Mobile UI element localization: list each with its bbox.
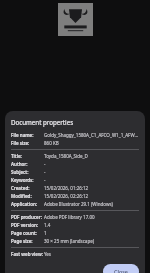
staticText: 1 bbox=[44, 230, 139, 236]
staticText: File name: bbox=[11, 132, 44, 138]
staticText: File size: bbox=[11, 140, 44, 146]
staticText: Document properties bbox=[11, 118, 74, 126]
staticText: 860 KB bbox=[44, 140, 139, 146]
staticText: Fast web view: bbox=[11, 251, 44, 257]
staticText: Adobe Illustrator 29.1 (Windows) bbox=[44, 201, 139, 207]
staticText: Page count: bbox=[11, 230, 44, 236]
staticText: 30 × 25 mm (landscape) bbox=[44, 238, 139, 244]
button[interactable]: Document preview bbox=[58, 3, 93, 36]
staticText: Page size: bbox=[11, 238, 44, 244]
staticText: Subject: bbox=[11, 169, 44, 175]
staticText: Keywords: bbox=[11, 177, 44, 183]
staticText: Toyda_1580A_Side_D bbox=[44, 153, 139, 159]
staticText: 15/02/2026, 02:26:12 bbox=[44, 193, 139, 199]
staticText: 1.4 bbox=[44, 222, 139, 228]
staticText: - bbox=[44, 161, 139, 167]
staticText: Goldy_Shaggy_1580A_C1_AFCO_W1_1_AFW0_G0_… bbox=[44, 132, 139, 138]
staticText: 15/02/2026, 01:26:12 bbox=[44, 185, 139, 191]
staticText: Created: bbox=[11, 185, 44, 191]
staticText: Adobe PDF library 17.00 bbox=[44, 214, 139, 220]
staticText: Yes bbox=[44, 251, 139, 257]
staticText: Author: bbox=[11, 161, 44, 167]
staticText: Modified: bbox=[11, 193, 44, 199]
button[interactable]: Close bbox=[103, 264, 139, 273]
staticText: PDF producer: bbox=[11, 214, 44, 220]
staticText: Close bbox=[114, 268, 128, 273]
staticText: - bbox=[44, 177, 139, 183]
staticText: - bbox=[44, 169, 139, 175]
staticText: Application: bbox=[11, 201, 44, 207]
staticText: PDF version: bbox=[11, 222, 44, 228]
staticText: Title: bbox=[11, 153, 44, 159]
